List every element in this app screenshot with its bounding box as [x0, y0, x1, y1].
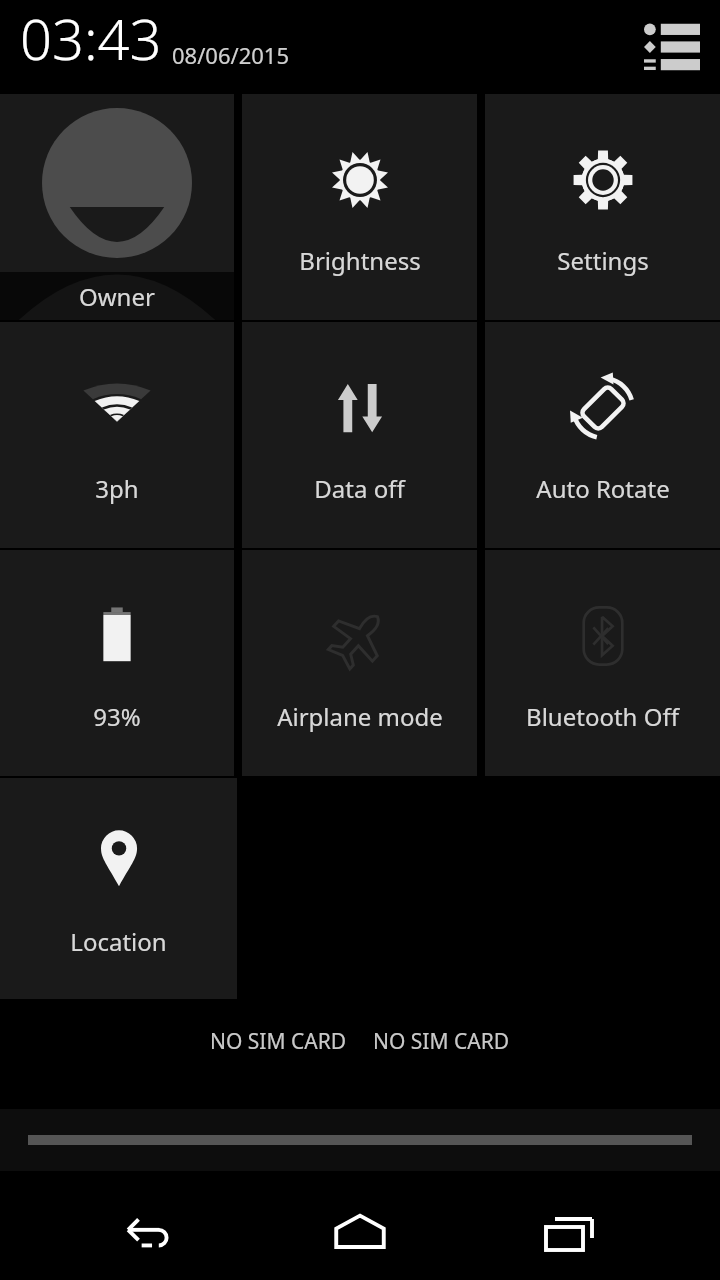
button[interactable]: Data off: [242, 322, 477, 548]
button[interactable]: 93%: [0, 550, 234, 776]
button[interactable]: Recent apps: [521, 1188, 617, 1280]
staticText: 08/06/2015: [172, 40, 290, 70]
button[interactable]: Home: [312, 1188, 408, 1280]
staticText: 3ph: [95, 472, 139, 505]
button[interactable]: Brightness: [242, 94, 477, 320]
button[interactable]: Location: [0, 778, 237, 999]
button[interactable]: 3ph: [0, 322, 234, 548]
staticText: NO SIM CARD: [210, 1027, 347, 1056]
staticText: 03:43: [20, 0, 162, 76]
staticText: Airplane mode: [277, 700, 443, 733]
button[interactable]: Settings: [485, 94, 720, 320]
staticText: 93%: [93, 700, 141, 733]
button[interactable]: Quick settings list: [638, 13, 706, 81]
button[interactable]: Bluetooth Off: [485, 550, 720, 776]
staticText: NO SIM CARD: [373, 1027, 510, 1056]
button[interactable]: Owner: [0, 94, 234, 320]
button[interactable]: Back: [103, 1188, 199, 1280]
button[interactable]: Airplane mode: [242, 550, 477, 776]
staticText: Data off: [314, 472, 405, 505]
button[interactable]: Auto Rotate: [485, 322, 720, 548]
staticText: Location: [70, 925, 167, 958]
staticText: Settings: [557, 244, 649, 277]
staticText: Brightness: [299, 244, 421, 277]
staticText: Bluetooth Off: [526, 700, 679, 733]
button[interactable]: [0, 1109, 720, 1171]
staticText: Auto Rotate: [536, 472, 670, 505]
staticText: Owner: [79, 280, 155, 313]
